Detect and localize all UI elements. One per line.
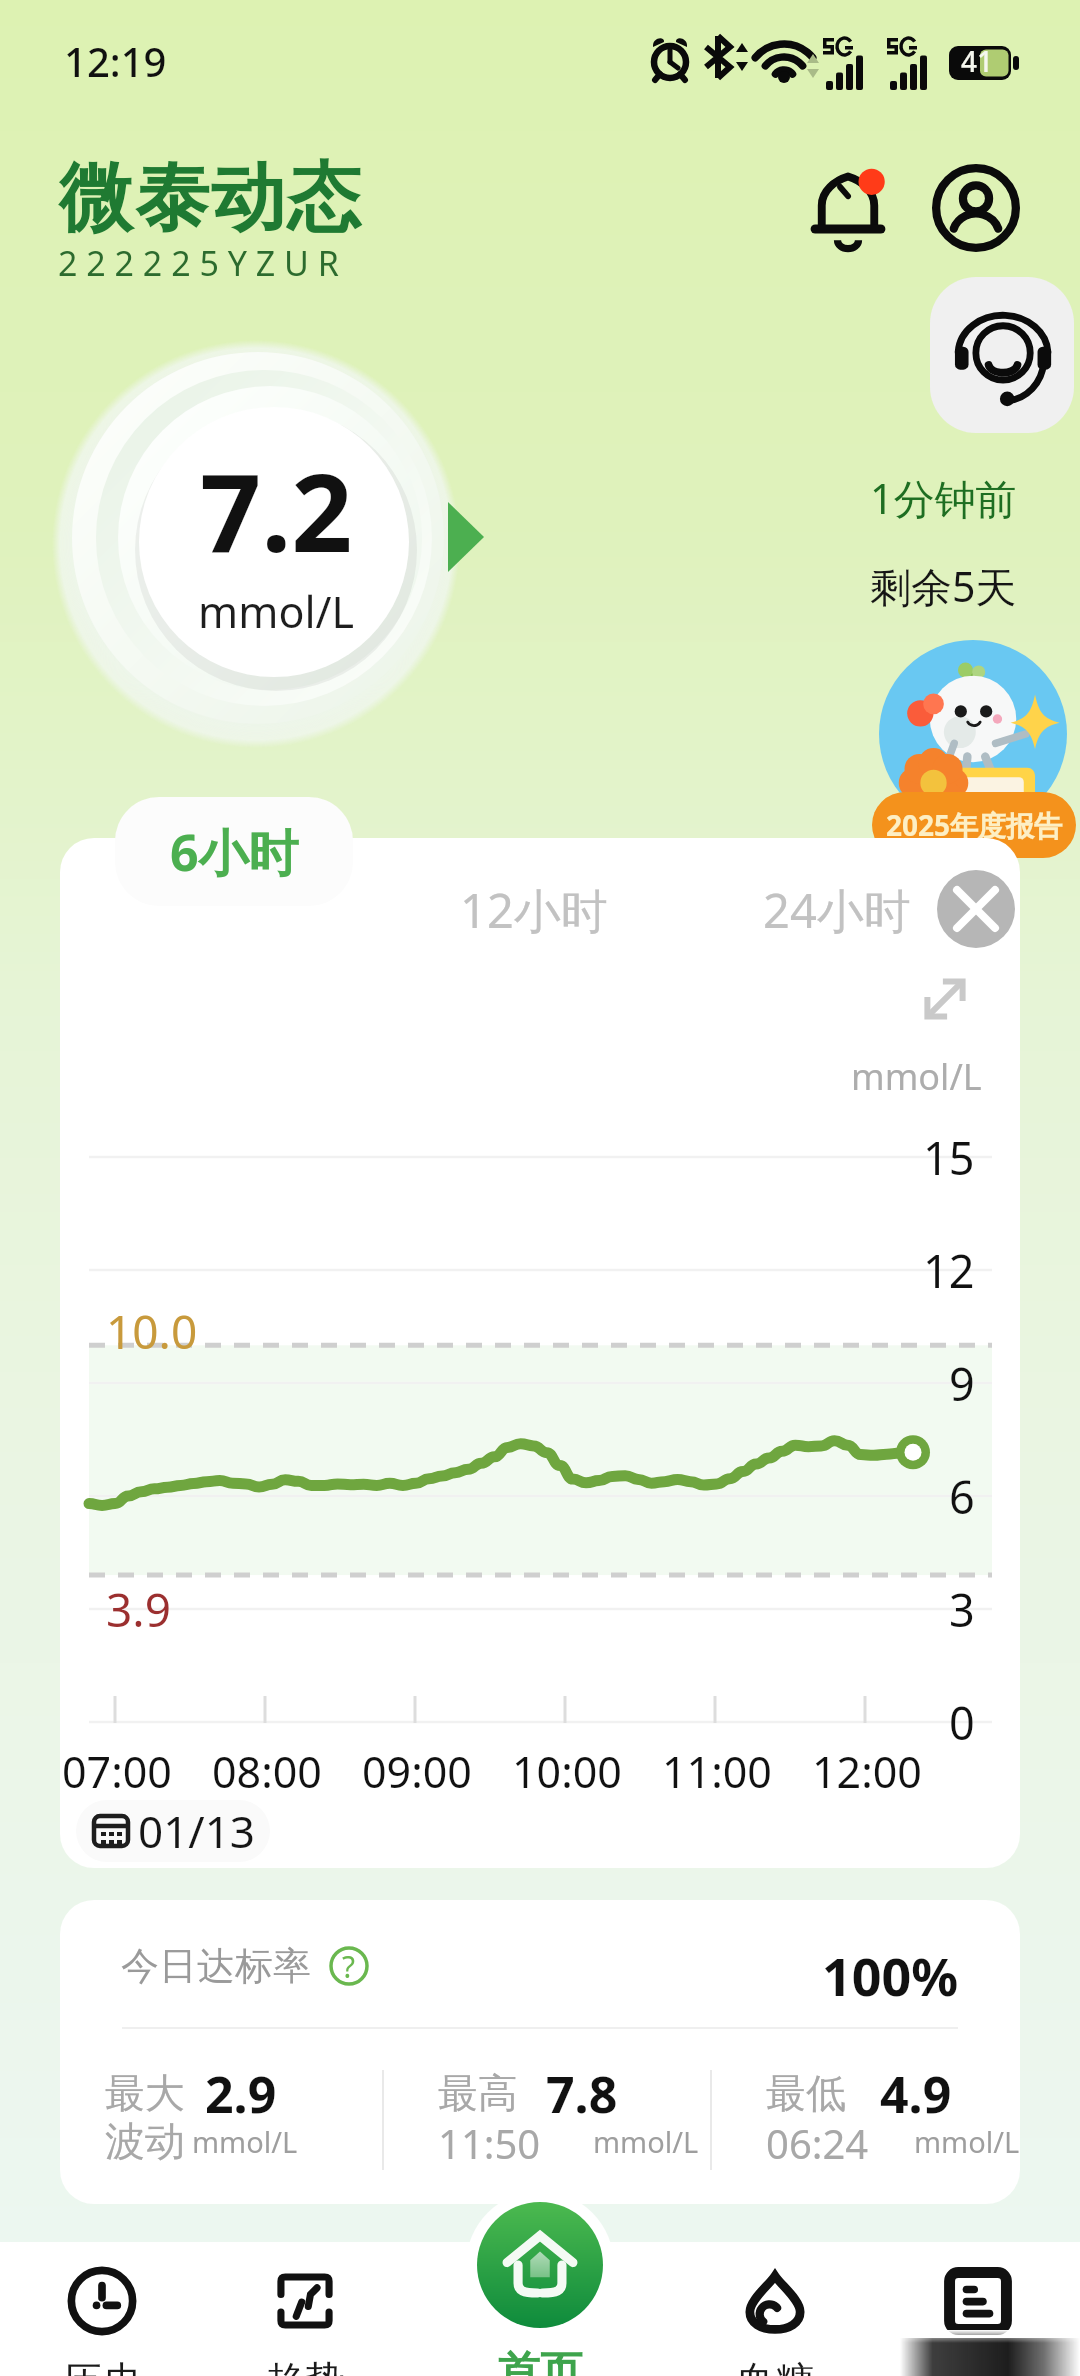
staticText: mmol/L [914,2122,1020,2161]
staticText: 最低 [766,2068,846,2118]
staticText: 1分钟前 [870,470,1017,526]
staticText: 09:00 [362,1742,472,1801]
button[interactable]: 6小时 [115,797,353,906]
staticText: 0 [949,1692,975,1753]
staticText: 4.9 [880,2060,952,2128]
staticText: 2 2 2 2 2 5 Y Z U R [58,240,339,286]
staticText: mmol/L [192,2122,298,2161]
button[interactable]: Customer service [930,277,1074,433]
staticText: 06:24 [766,2116,869,2170]
staticText: 7.2 [200,438,353,584]
other: Help [329,1946,369,1986]
button[interactable]: Home [477,2202,603,2328]
staticText: 2025年度报告 [886,806,1063,844]
button[interactable]: 最高 [438,2058,738,2186]
staticText: 首页 [498,2346,582,2376]
staticText: 最高 [438,2068,518,2118]
button[interactable]: 7.2 [28,310,488,770]
staticText: 12:19 [64,34,167,88]
staticText: 趋势 [265,2356,345,2376]
button[interactable]: 最低 [766,2058,1020,2186]
staticText: 12 [923,1240,975,1301]
staticText: 7.8 [546,2060,618,2128]
button[interactable]: 01/13 [90,1800,256,1862]
button[interactable]: 最大 [105,2058,405,2186]
staticText: 11:50 [438,2116,541,2170]
staticText: mmol/L [593,2122,699,2161]
staticText: 9 [949,1353,975,1414]
button[interactable]: 2025 annual report [872,640,1080,858]
button[interactable]: 12小时 [460,878,608,942]
staticText: mmol/L [198,582,355,641]
button[interactable]: 历史 [12,2266,192,2376]
staticText: 07:00 [62,1742,172,1801]
staticText: 波动 [105,2116,185,2166]
staticText: 12:00 [812,1742,922,1801]
staticText: 微泰动态 [58,152,362,245]
button[interactable]: 24小时 [763,878,911,942]
button[interactable]: Notifications [790,150,906,266]
button[interactable]: 血糖 [685,2266,865,2376]
staticText: 10.0 [106,1300,198,1363]
staticText: 10:00 [512,1742,622,1801]
staticText: 历史 [62,2356,142,2376]
button[interactable]: 趋势 [215,2266,395,2376]
staticText: 08:00 [212,1742,322,1801]
button[interactable] [888,2266,1068,2376]
button[interactable]: Close [937,870,1015,948]
staticText: 3.9 [106,1578,171,1641]
staticText: mmol/L [851,1052,982,1101]
staticText: 剩余5天 [870,558,1017,614]
staticText: 2.9 [205,2060,277,2128]
staticText: 15 [923,1127,975,1188]
staticText: 11:00 [662,1742,772,1801]
staticText: 今日达标率 [121,1942,311,1990]
staticText: ? [342,1946,356,1986]
staticText: 血糖 [735,2356,815,2376]
staticText: 41 [961,42,994,80]
staticText: 3 [949,1579,975,1640]
staticText: 100% [822,1940,959,2011]
staticText: 6 [949,1466,975,1527]
staticText: 6小时 [170,818,299,886]
staticText: 最大 [105,2068,185,2118]
button[interactable]: Full screen [905,959,985,1039]
button[interactable]: 今日达标率 [121,1942,369,1990]
button[interactable]: Profile [918,150,1034,266]
staticText: 01/13 [138,1801,256,1861]
